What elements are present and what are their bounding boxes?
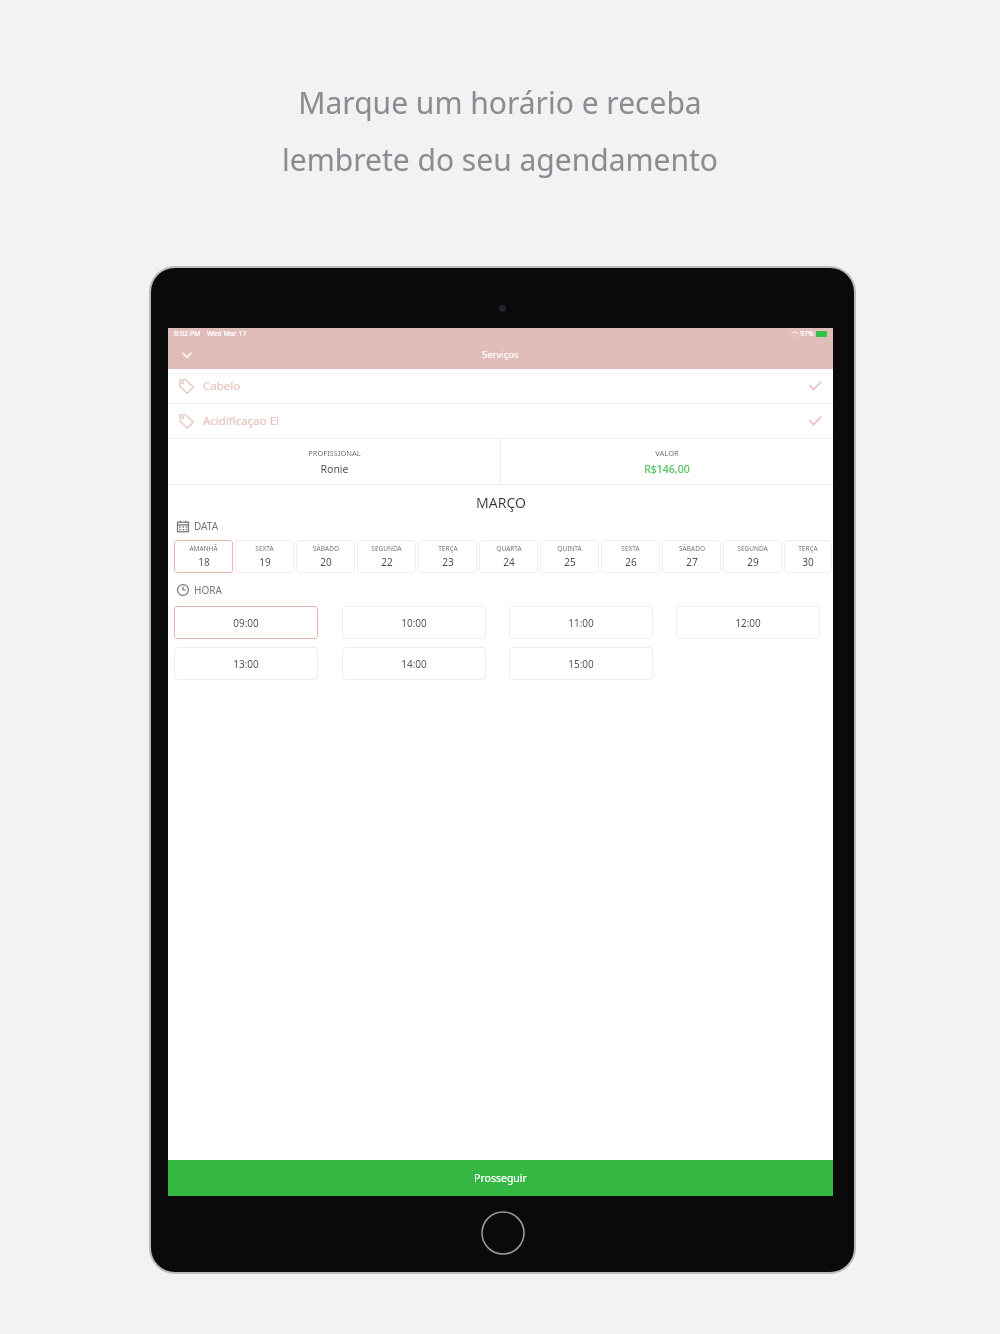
staticText: 13:00: [233, 657, 259, 671]
button[interactable]: TERÇA: [784, 540, 832, 573]
staticText: 27: [686, 555, 698, 569]
staticText: SÁBADO: [313, 544, 339, 553]
staticText: MARÇO: [476, 493, 526, 512]
staticText: 97%: [800, 329, 814, 339]
staticText: 24: [503, 555, 515, 569]
staticText: SÁBADO: [679, 544, 705, 553]
button[interactable]: 10:00: [342, 606, 486, 639]
staticText: Serviços: [482, 348, 519, 361]
staticText: 11:00: [568, 616, 594, 630]
button[interactable]: Prosseguir: [168, 1160, 833, 1196]
staticText: 26: [625, 555, 637, 569]
staticText: 14:00: [401, 657, 427, 671]
staticText: 15:00: [568, 657, 594, 671]
button[interactable]: 12:00: [676, 606, 820, 639]
staticText: DATA: [194, 519, 219, 533]
button[interactable]: 09:00: [174, 606, 318, 639]
staticText: 09:00: [233, 616, 259, 630]
staticText: 18: [198, 555, 210, 569]
staticText: VALOR: [655, 448, 679, 458]
staticText: TERÇA: [438, 544, 458, 553]
button[interactable]: SEGUNDA: [357, 540, 416, 573]
button[interactable]: VALOR: [501, 439, 833, 484]
button[interactable]: QUINTA: [540, 540, 599, 573]
staticText: 22: [381, 555, 393, 569]
staticText: QUARTA: [496, 544, 522, 553]
staticText: Marque um horário e receba: [298, 82, 702, 123]
button[interactable]: 13:00: [174, 647, 318, 680]
button[interactable]: 15:00: [509, 647, 653, 680]
button[interactable]: Acidificaçao El: [168, 404, 833, 439]
staticText: AMANHÃ: [189, 544, 218, 553]
staticText: Ronie: [320, 462, 349, 476]
button[interactable]: AMANHÃ: [174, 540, 233, 573]
button[interactable]: SEGUNDA: [723, 540, 782, 573]
staticText: SEXTA: [621, 544, 640, 553]
staticText: 30: [802, 555, 814, 569]
staticText: R$146,00: [644, 462, 690, 476]
staticText: 19: [259, 555, 271, 569]
staticText: Prosseguir: [474, 1171, 527, 1185]
staticText: 29: [747, 555, 759, 569]
staticText: PROFISSIONAL: [308, 448, 361, 458]
staticText: HORA: [194, 583, 222, 597]
staticText: Cabelo: [203, 378, 241, 394]
staticText: TERÇA: [798, 544, 818, 553]
button[interactable]: Fechar: [176, 344, 198, 366]
staticText: lembrete do seu agendamento: [282, 139, 718, 180]
staticText: 23: [442, 555, 454, 569]
staticText: 12:00: [735, 616, 761, 630]
button[interactable]: 14:00: [342, 647, 486, 680]
button[interactable]: SEXTA: [235, 540, 294, 573]
button[interactable]: SEXTA: [601, 540, 660, 573]
staticText: 10:00: [401, 616, 427, 630]
button[interactable]: TERÇA: [418, 540, 477, 573]
staticText: Wed Mar 17: [207, 329, 247, 339]
staticText: 20: [320, 555, 332, 569]
staticText: 25: [564, 555, 576, 569]
staticText: Acidificaçao El: [203, 413, 280, 429]
button[interactable]: Cabelo: [168, 369, 833, 404]
staticText: 6:02 PM: [174, 329, 201, 339]
button[interactable]: SÁBADO: [662, 540, 721, 573]
button[interactable]: QUARTA: [479, 540, 538, 573]
button[interactable]: 11:00: [509, 606, 653, 639]
staticText: SEXTA: [255, 544, 274, 553]
staticText: SEGUNDA: [737, 544, 768, 553]
button[interactable]: SÁBADO: [296, 540, 355, 573]
staticText: SEGUNDA: [371, 544, 402, 553]
button[interactable]: PROFISSIONAL: [168, 439, 500, 484]
staticText: QUINTA: [557, 544, 582, 553]
